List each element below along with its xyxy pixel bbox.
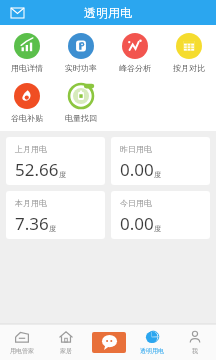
staticText: 度 xyxy=(154,170,161,179)
button[interactable]: 本月用电 xyxy=(6,191,105,239)
staticText: 电量找回 xyxy=(65,113,97,123)
staticText: 上月用电 xyxy=(15,144,47,154)
staticText: 实时功率 xyxy=(65,63,97,73)
button[interactable]: 谷电补贴 xyxy=(0,80,54,125)
staticText: 谷电补贴 xyxy=(11,113,43,123)
staticText: 本月用电 xyxy=(15,198,47,208)
button[interactable]: 用电管家 xyxy=(0,324,44,360)
button[interactable]: 按月对比 xyxy=(162,30,216,75)
staticText: 家居 xyxy=(60,347,72,355)
button[interactable]: 用电详情 xyxy=(0,30,54,75)
staticText: 峰谷分析 xyxy=(119,63,151,73)
staticText: 度 xyxy=(59,170,66,179)
button[interactable]: Chat xyxy=(92,332,126,353)
button[interactable]: 透明用电 xyxy=(130,324,173,360)
staticText: 透明用电 xyxy=(140,347,164,355)
staticText: 昨日用电 xyxy=(120,144,152,154)
button[interactable]: 峰谷分析 xyxy=(108,30,162,75)
staticText: 用电管家 xyxy=(10,347,34,355)
staticText: 度 xyxy=(154,224,161,233)
button[interactable]: Messages xyxy=(7,3,27,23)
staticText: 透明用电 xyxy=(84,5,132,20)
button[interactable]: 上月用电 xyxy=(6,137,105,185)
button[interactable]: 实时功率 xyxy=(54,30,108,75)
button[interactable]: 电量找回 xyxy=(54,80,108,125)
staticText: 52.66 xyxy=(15,158,59,181)
staticText: 今日用电 xyxy=(120,198,152,208)
staticText: 7.36 xyxy=(15,212,49,235)
button[interactable]: 昨日用电 xyxy=(111,137,210,185)
staticText: 度 xyxy=(49,224,56,233)
staticText: 按月对比 xyxy=(173,63,205,73)
button[interactable]: 今日用电 xyxy=(111,191,210,239)
staticText: 我 xyxy=(192,347,198,355)
staticText: 0.00 xyxy=(120,212,154,235)
staticText: 0.00 xyxy=(120,158,154,181)
button[interactable]: 我 xyxy=(173,324,216,360)
button[interactable]: 家居 xyxy=(44,324,87,360)
staticText: 用电详情 xyxy=(11,63,43,73)
